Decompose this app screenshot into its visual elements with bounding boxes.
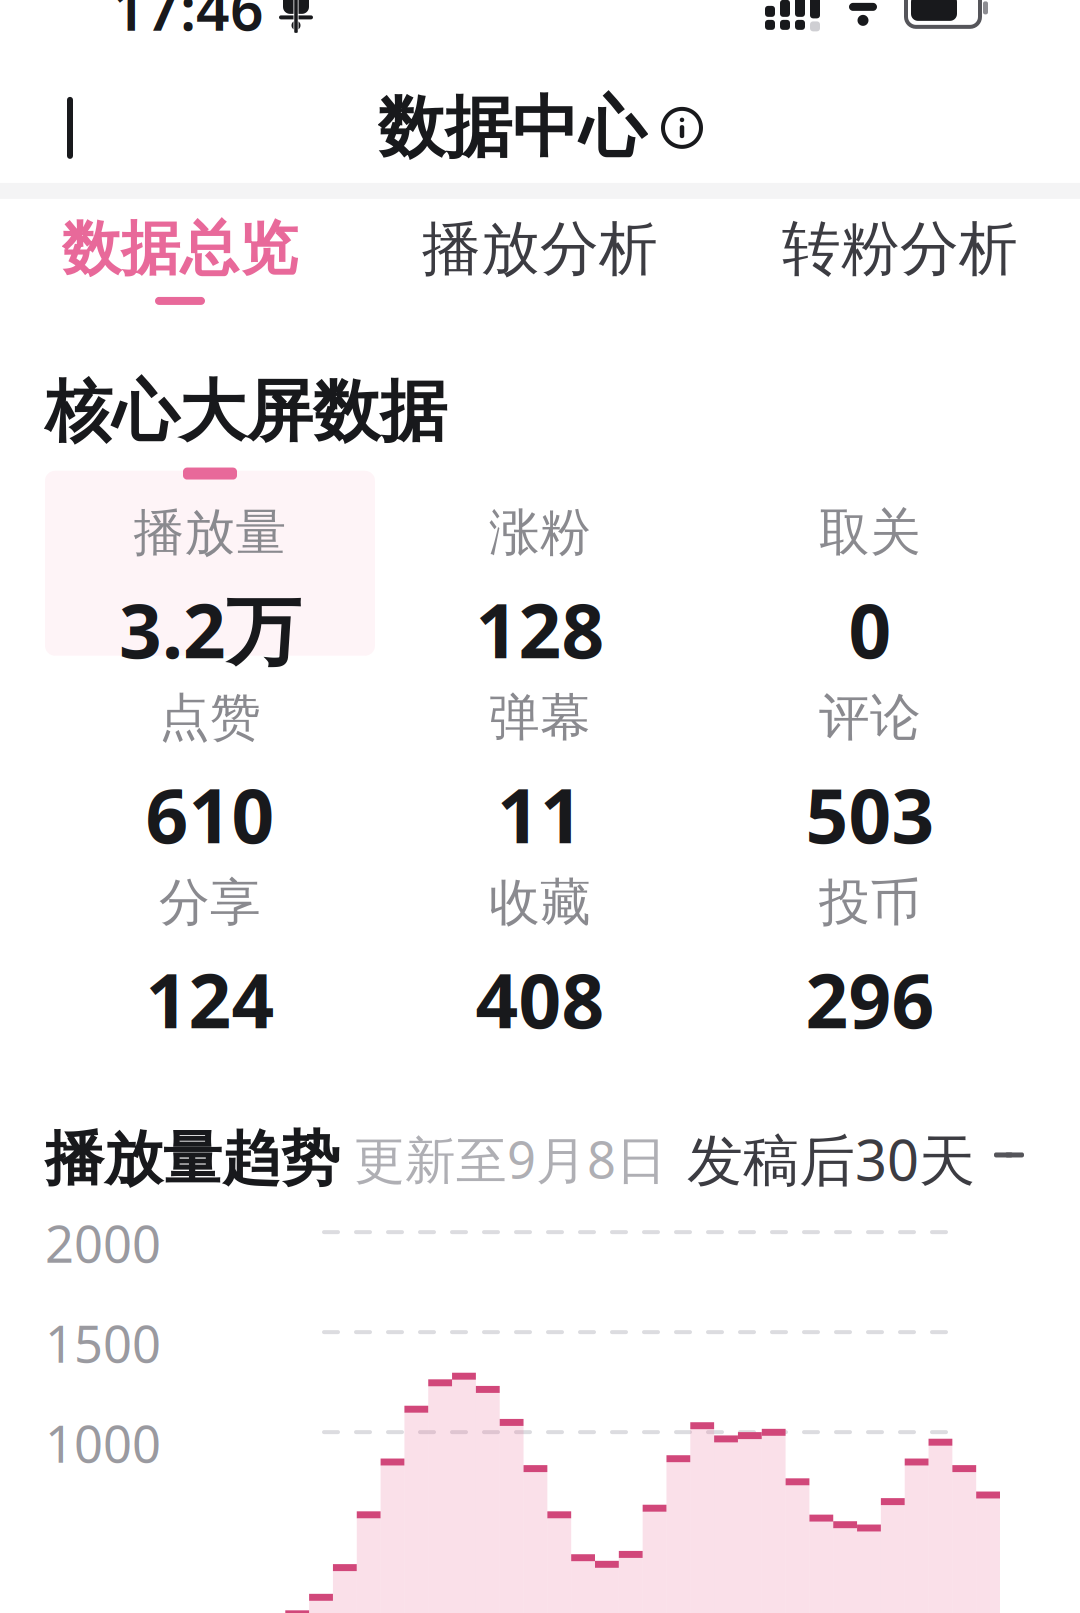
staticText: 播放分析 [422, 213, 658, 285]
button[interactable]: 收藏 [375, 841, 705, 1026]
staticText: 播放量 [133, 502, 286, 564]
button[interactable]: 评论 [705, 656, 1035, 841]
staticText: 转粉分析 [782, 213, 1018, 285]
staticText: 124 [145, 950, 274, 1049]
staticText: 1000 [45, 1409, 161, 1477]
staticText: 数据总览 [62, 213, 298, 285]
button[interactable]: 分享 [45, 841, 375, 1026]
staticText: 点赞 [159, 687, 261, 749]
staticText: 发稿后30天 [687, 1122, 975, 1196]
staticText: 2000 [45, 1209, 161, 1277]
staticText: 投币 [819, 872, 921, 934]
staticText: 128 [475, 580, 604, 679]
staticText: 11 [497, 765, 583, 864]
staticText: 408 [475, 950, 604, 1049]
staticText: 评论 [819, 687, 921, 749]
button[interactable]: 播放量 [45, 471, 375, 656]
staticText: 3.2万 [119, 580, 301, 679]
button[interactable]: 数据总览 [0, 199, 360, 319]
button[interactable]: 弹幕 [375, 656, 705, 841]
staticText: 更新至9月8日 [354, 1125, 667, 1193]
button[interactable]: 数据中心 说明 [370, 81, 710, 175]
staticText: 296 [805, 950, 934, 1049]
staticText: 核心大屏数据 [45, 371, 447, 453]
staticText: 播放量趋势 [45, 1123, 340, 1195]
button[interactable]: 发稿后30天 [681, 1112, 1035, 1206]
staticText: 弹幕 [489, 687, 591, 749]
button[interactable]: 点赞 [45, 656, 375, 841]
staticText: 收藏 [489, 872, 591, 934]
button[interactable]: 取关 [705, 471, 1035, 656]
staticText: 涨粉 [489, 502, 591, 564]
button[interactable]: 涨粉 [375, 471, 705, 656]
staticText: 数据中心 [378, 87, 646, 169]
button[interactable]: 返回 [22, 80, 118, 176]
staticText: 1500 [45, 1309, 161, 1377]
staticText: 取关 [819, 502, 921, 564]
staticText: 0 [848, 580, 891, 679]
button[interactable]: 转粉分析 [720, 199, 1080, 319]
staticText: 17:46 [112, 0, 264, 47]
staticText: 分享 [159, 872, 261, 934]
staticText: 610 [145, 765, 274, 864]
staticText: 503 [805, 765, 934, 864]
button[interactable]: 投币 [705, 841, 1035, 1026]
button[interactable]: 播放分析 [360, 199, 720, 319]
